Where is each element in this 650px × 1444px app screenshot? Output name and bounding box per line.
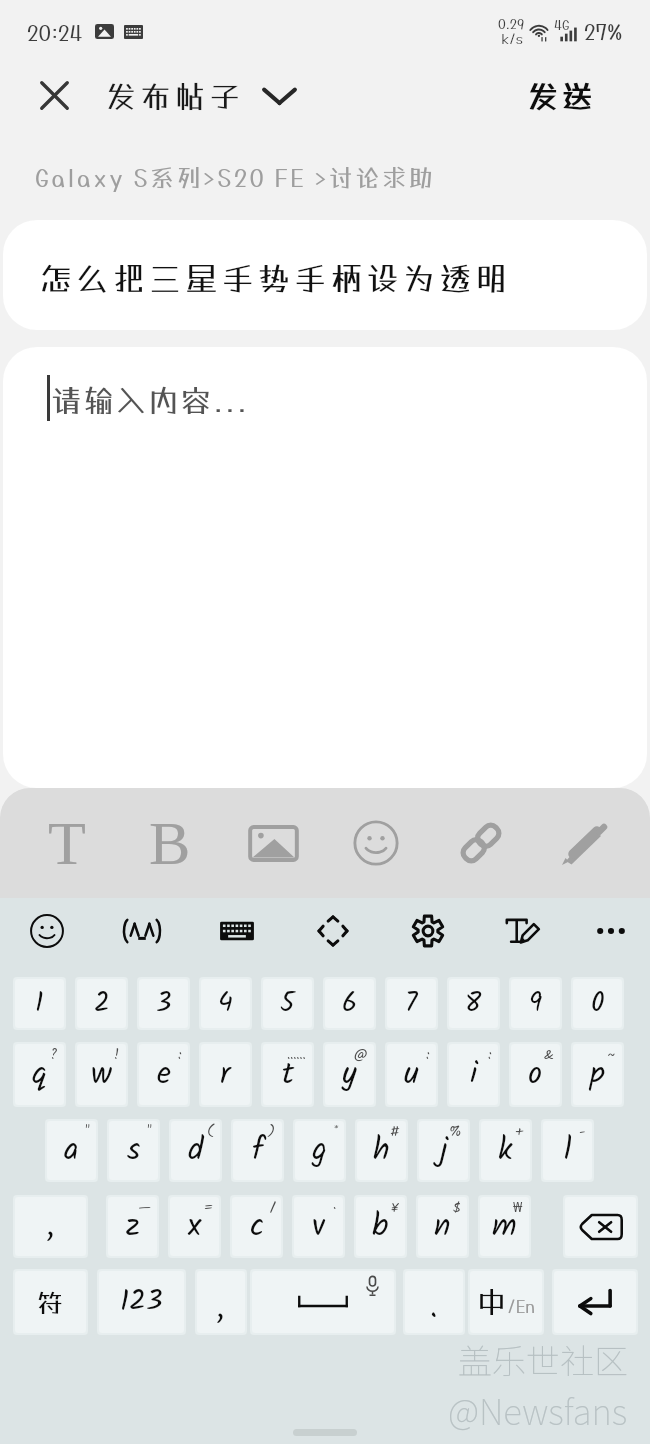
button[interactable]: Keyboard layout — [209, 903, 265, 959]
staticText: 发布帖子 — [106, 79, 245, 114]
button[interactable]: 中 — [470, 1271, 542, 1333]
button[interactable]: . — [405, 1271, 463, 1333]
button[interactable]: 7 — [387, 979, 436, 1028]
staticText: 怎么把三星手势手柄设为透明 — [40, 260, 512, 298]
button[interactable]: g — [295, 1121, 344, 1180]
staticText: z — [126, 1202, 140, 1251]
staticText: 盖乐世社区 — [458, 1335, 628, 1384]
staticText: 2 — [94, 982, 110, 1025]
button[interactable]: Draw — [550, 809, 618, 877]
staticText: : — [178, 1044, 182, 1066]
staticText: 27% — [584, 19, 623, 44]
button[interactable]: n — [418, 1197, 467, 1256]
button[interactable]: Emoji — [19, 903, 75, 959]
button[interactable]: k — [481, 1121, 530, 1180]
button[interactable]: , — [15, 1197, 86, 1256]
button[interactable]: u — [387, 1044, 436, 1105]
button[interactable]: 4 — [201, 979, 250, 1028]
staticText: · — [333, 1197, 337, 1219]
button[interactable]: Bold — [136, 809, 204, 877]
button[interactable]: Resize keyboard — [305, 903, 361, 959]
staticText: 123 — [120, 1279, 163, 1325]
button[interactable] — [252, 1271, 394, 1333]
staticText: t — [282, 1050, 294, 1099]
button[interactable]: z — [108, 1197, 157, 1256]
staticText: e — [157, 1050, 171, 1099]
button[interactable]: Insert link — [447, 809, 515, 877]
button[interactable]: o — [511, 1044, 560, 1105]
staticText: B — [149, 809, 191, 877]
button[interactable]: Handwriting — [495, 903, 551, 959]
staticText: n — [434, 1202, 451, 1251]
button[interactable]: Galaxy S系列>S20 FE >讨论求助 — [0, 152, 650, 202]
button[interactable]: b — [356, 1197, 405, 1256]
staticText: x — [188, 1202, 202, 1251]
button[interactable]: l — [543, 1121, 592, 1180]
button[interactable]: , — [197, 1271, 245, 1333]
button[interactable]: Close — [24, 65, 85, 126]
staticText: j — [440, 1126, 448, 1175]
button[interactable]: j — [419, 1121, 468, 1180]
staticText: k — [498, 1126, 513, 1175]
staticText: = — [204, 1197, 213, 1219]
button[interactable]: q — [15, 1044, 64, 1105]
staticText: & — [544, 1044, 554, 1066]
button[interactable]: h — [357, 1121, 406, 1180]
staticText: 4G — [554, 17, 570, 32]
button[interactable]: 怎么把三星手势手柄设为透明 — [3, 220, 647, 330]
staticText: — — [138, 1197, 151, 1219]
staticText: y — [342, 1050, 357, 1099]
button[interactable]: 6 — [325, 979, 374, 1028]
button[interactable]: Insert image — [239, 809, 307, 877]
button[interactable]: r — [201, 1044, 250, 1105]
button[interactable]: v — [294, 1197, 343, 1256]
button[interactable] — [565, 1197, 636, 1256]
button[interactable]: Text style — [33, 809, 101, 877]
button[interactable]: 1 — [15, 979, 64, 1028]
staticText: @ — [354, 1044, 368, 1066]
staticText: , — [217, 1283, 225, 1333]
button[interactable]: 0 — [573, 979, 622, 1028]
staticText: 0.29 — [498, 16, 525, 31]
staticText: 4 — [218, 982, 233, 1025]
button[interactable] — [554, 1271, 636, 1333]
button[interactable]: e — [139, 1044, 188, 1105]
button[interactable]: Kaomoji — [114, 903, 170, 959]
button[interactable]: Emoji — [342, 809, 410, 877]
button[interactable]: a — [47, 1121, 96, 1180]
button[interactable]: i — [449, 1044, 498, 1105]
staticText: : — [488, 1044, 492, 1066]
button[interactable]: f — [233, 1121, 282, 1180]
button[interactable]: x — [170, 1197, 219, 1256]
button[interactable]: 请输入内容... — [3, 347, 647, 788]
staticText: : — [426, 1044, 430, 1066]
button[interactable]: t — [263, 1044, 312, 1105]
button[interactable]: 5 — [263, 979, 312, 1028]
button[interactable]: c — [232, 1197, 281, 1256]
staticText: q — [32, 1050, 47, 1099]
button[interactable]: 9 — [511, 979, 560, 1028]
staticText: ¥ — [391, 1197, 399, 1219]
button[interactable]: s — [109, 1121, 158, 1180]
button[interactable]: p — [573, 1044, 622, 1105]
button[interactable]: 发布帖子 — [106, 79, 297, 114]
staticText: a — [64, 1126, 79, 1175]
button[interactable]: w — [77, 1044, 126, 1105]
staticText: " — [85, 1121, 90, 1143]
button[interactable]: y — [325, 1044, 374, 1105]
button[interactable]: 2 — [77, 979, 126, 1028]
button[interactable]: Keyboard settings — [400, 903, 456, 959]
button[interactable]: d — [171, 1121, 220, 1180]
button[interactable]: 符 — [15, 1271, 86, 1333]
button[interactable]: 123 — [99, 1271, 184, 1333]
staticText: 5 — [280, 982, 295, 1025]
staticText: + — [515, 1121, 524, 1143]
button[interactable]: More options — [583, 903, 639, 959]
staticText: 6 — [342, 982, 358, 1025]
button[interactable]: 发送 — [528, 79, 596, 114]
button[interactable]: 3 — [139, 979, 188, 1028]
button[interactable]: 8 — [449, 979, 498, 1028]
staticText: c — [250, 1202, 264, 1251]
staticText: # — [390, 1121, 400, 1143]
button[interactable]: m — [480, 1197, 529, 1256]
